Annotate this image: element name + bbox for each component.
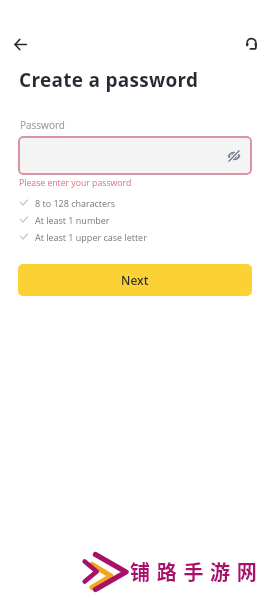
button[interactable]: Customer support: [236, 29, 266, 59]
staticText: At least 1 number: [35, 214, 110, 226]
staticText: Next: [121, 272, 149, 288]
staticText: Please enter your password: [19, 177, 132, 189]
staticText: At least 1 upper case letter: [35, 231, 147, 243]
staticText: Create a password: [19, 67, 199, 93]
staticText: 铺路手游网: [130, 557, 264, 586]
button[interactable]: Next: [18, 264, 252, 296]
staticText: Password: [20, 118, 65, 132]
button[interactable]: Back: [5, 29, 35, 59]
staticText: 8 to 128 characters: [35, 197, 116, 209]
button[interactable]: Show password: [18, 136, 252, 175]
button[interactable]: Show password: [222, 144, 246, 168]
